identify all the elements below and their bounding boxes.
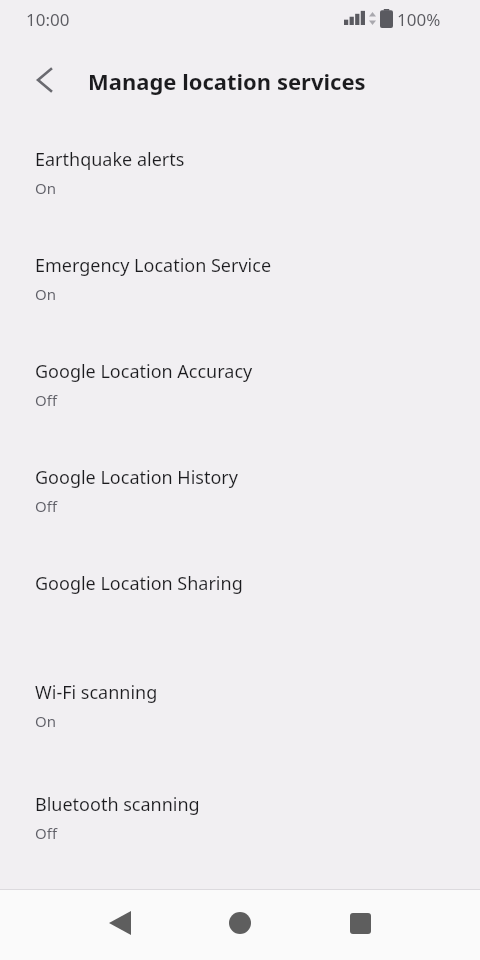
button[interactable]: Back [92, 895, 148, 951]
staticText: Google Location Sharing [35, 571, 243, 596]
button[interactable]: Recent apps [332, 895, 388, 951]
button[interactable]: Earthquake alerts [0, 134, 480, 206]
button[interactable]: Google Location History [0, 452, 480, 524]
staticText: Wi-Fi scanning [35, 680, 158, 705]
staticText: 10:00 [26, 8, 70, 31]
staticText: On [35, 284, 56, 304]
staticText: On [35, 178, 56, 198]
staticText: Off [35, 823, 58, 843]
button[interactable]: Wi-Fi scanning [0, 667, 480, 739]
staticText: Manage location services [88, 66, 366, 96]
button[interactable]: Bluetooth scanning [0, 779, 480, 851]
button[interactable]: Home [212, 895, 268, 951]
button[interactable]: Google Location Sharing [0, 558, 480, 602]
button[interactable]: Google Location Accuracy [0, 346, 480, 418]
staticText: Google Location History [35, 465, 238, 490]
staticText: Emergency Location Service [35, 253, 272, 278]
button[interactable]: Emergency Location Service [0, 240, 480, 312]
staticText: On [35, 711, 56, 731]
staticText: 100% [397, 8, 441, 31]
staticText: Off [35, 390, 58, 410]
button[interactable]: Back [20, 56, 68, 104]
staticText: Google Location Accuracy [35, 359, 253, 384]
staticText: Off [35, 496, 58, 516]
staticText: Bluetooth scanning [35, 792, 200, 817]
staticText: Earthquake alerts [35, 147, 185, 172]
